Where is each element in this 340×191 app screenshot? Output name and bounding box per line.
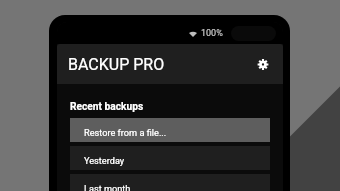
staticText: BACKUP PRO bbox=[68, 55, 165, 74]
staticText: Yesterday bbox=[84, 155, 125, 166]
button[interactable]: Restore from a file... bbox=[70, 118, 270, 142]
staticText: 100% bbox=[201, 28, 223, 39]
staticText: Recent backups bbox=[70, 101, 144, 113]
button[interactable]: Settings bbox=[251, 52, 275, 76]
staticText: Restore from a file... bbox=[84, 127, 167, 138]
button[interactable]: Last month bbox=[70, 174, 270, 191]
staticText: Last month bbox=[84, 183, 131, 191]
button[interactable]: Yesterday bbox=[70, 146, 270, 170]
